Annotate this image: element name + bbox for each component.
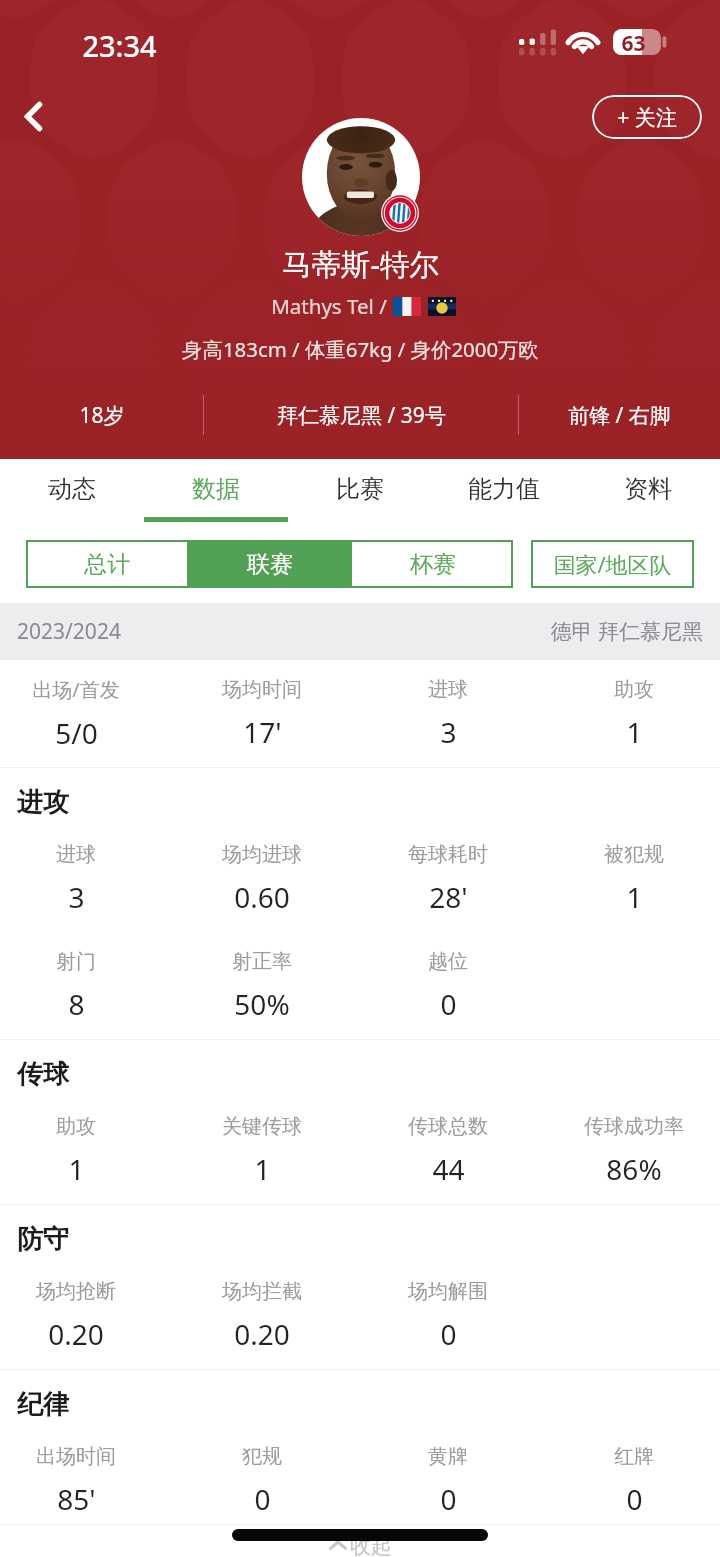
- staticText: 动态: [48, 474, 96, 504]
- staticText: 44: [432, 1150, 465, 1188]
- staticText: 越位: [428, 949, 468, 974]
- staticText: 前锋 / 右脚: [568, 401, 671, 430]
- staticText: 纪律: [17, 1388, 69, 1421]
- staticText: 场均进球: [222, 842, 302, 867]
- staticText: 17': [243, 713, 282, 751]
- button[interactable]: 杯赛: [352, 540, 513, 588]
- staticText: 助攻: [614, 677, 654, 702]
- staticText: 马蒂斯-特尔: [282, 243, 439, 283]
- staticText: 场均抢断: [36, 1279, 116, 1304]
- staticText: 红牌: [614, 1444, 654, 1469]
- staticText: 28': [429, 878, 468, 916]
- button[interactable]: + 关注: [592, 95, 702, 139]
- button[interactable]: 资料: [576, 459, 720, 525]
- staticText: 场均时间: [222, 677, 302, 702]
- staticText: 场均拦截: [222, 1279, 302, 1304]
- button[interactable]: 动态: [0, 459, 144, 525]
- staticText: Mathys Tel /: [271, 292, 387, 320]
- staticText: 1: [68, 1150, 85, 1188]
- button[interactable]: 总计: [26, 540, 187, 588]
- staticText: 63: [621, 29, 646, 55]
- staticText: 出场时间: [36, 1444, 116, 1469]
- staticText: 50%: [234, 985, 290, 1023]
- staticText: 3: [440, 713, 457, 751]
- staticText: 8: [68, 985, 85, 1023]
- staticText: 身高183cm / 体重67kg / 身价2000万欧: [182, 335, 539, 363]
- staticText: 0.20: [234, 1315, 290, 1353]
- staticText: 关键传球: [222, 1114, 302, 1139]
- button[interactable]: 数据: [144, 459, 288, 525]
- staticText: + 关注: [617, 103, 677, 132]
- staticText: 传球成功率: [584, 1114, 684, 1139]
- staticText: 出场/首发: [32, 676, 120, 703]
- staticText: 犯规: [242, 1444, 282, 1469]
- staticText: 85': [57, 1480, 96, 1518]
- staticText: 射门: [56, 949, 96, 974]
- staticText: 每球耗时: [408, 842, 488, 867]
- staticText: 0: [440, 985, 457, 1023]
- staticText: 0: [440, 1480, 457, 1518]
- staticText: 场均解围: [408, 1279, 488, 1304]
- staticText: 比赛: [336, 474, 384, 504]
- button[interactable]: 收起: [328, 1533, 392, 1557]
- button[interactable]: 能力值: [432, 459, 576, 525]
- staticText: 防守: [17, 1223, 69, 1256]
- staticText: 进攻: [17, 786, 69, 819]
- staticText: 1: [626, 878, 643, 916]
- staticText: 国家/地区队: [553, 549, 672, 579]
- staticText: 资料: [624, 474, 672, 504]
- staticText: 进球: [428, 677, 468, 702]
- button[interactable]: 联赛: [189, 540, 350, 588]
- staticText: 3: [68, 878, 85, 916]
- button[interactable]: 比赛: [288, 459, 432, 525]
- staticText: 射正率: [232, 949, 292, 974]
- staticText: 传球总数: [408, 1114, 488, 1139]
- staticText: 联赛: [247, 550, 293, 579]
- staticText: 黄牌: [428, 1444, 468, 1469]
- staticText: 18岁: [79, 401, 125, 430]
- staticText: 能力值: [468, 474, 540, 504]
- staticText: 86%: [606, 1150, 662, 1188]
- staticText: 0: [254, 1480, 271, 1518]
- staticText: 数据: [192, 474, 240, 504]
- staticText: 5/0: [55, 714, 98, 752]
- staticText: 1: [254, 1150, 271, 1188]
- staticText: 2023/2024: [17, 617, 121, 646]
- staticText: 收起: [350, 1533, 392, 1557]
- staticText: 进球: [56, 842, 96, 867]
- staticText: 拜仁慕尼黑 / 39号: [277, 401, 446, 430]
- button[interactable]: Back: [5, 88, 61, 144]
- staticText: 助攻: [56, 1114, 96, 1139]
- staticText: 杯赛: [410, 550, 456, 579]
- staticText: 0.60: [234, 878, 290, 916]
- staticText: 德甲 拜仁慕尼黑: [550, 617, 703, 646]
- staticText: 被犯规: [604, 842, 664, 867]
- button[interactable]: 国家/地区队: [531, 540, 694, 588]
- staticText: 0: [440, 1315, 457, 1353]
- staticText: 0.20: [48, 1315, 104, 1353]
- staticText: 0: [626, 1480, 643, 1518]
- staticText: 1: [626, 713, 643, 751]
- staticText: 总计: [84, 550, 130, 579]
- staticText: 传球: [17, 1058, 69, 1091]
- staticText: 23:34: [82, 26, 157, 65]
